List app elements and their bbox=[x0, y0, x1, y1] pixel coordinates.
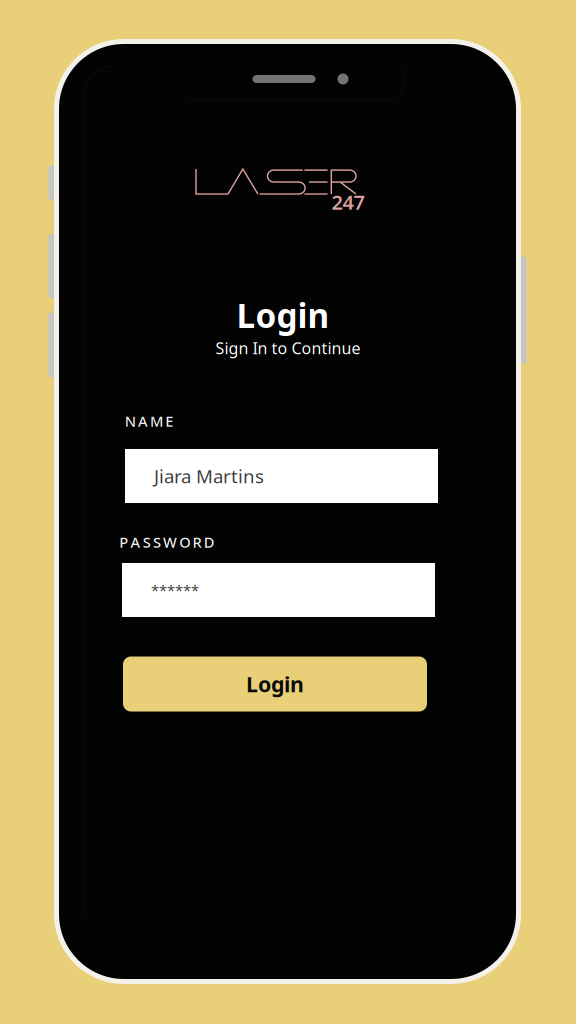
staticText: R bbox=[192, 532, 201, 552]
staticText: Login bbox=[246, 670, 304, 698]
staticText: Jiara Martins bbox=[154, 464, 264, 488]
staticText: S bbox=[153, 532, 161, 552]
staticText: W bbox=[163, 532, 177, 552]
staticText: ****** bbox=[151, 580, 199, 600]
staticText: 247 bbox=[331, 189, 364, 215]
staticText: A bbox=[130, 532, 140, 552]
staticText: A bbox=[138, 411, 148, 431]
staticText: S bbox=[143, 532, 151, 552]
staticText: P bbox=[119, 532, 128, 552]
staticText: D bbox=[204, 532, 215, 552]
button[interactable]: Login bbox=[123, 656, 427, 711]
staticText: N bbox=[125, 411, 136, 431]
staticText: E bbox=[165, 411, 173, 431]
staticText: Sign In to Continue bbox=[215, 337, 360, 359]
staticText: Login bbox=[236, 293, 329, 337]
staticText: O bbox=[179, 532, 190, 552]
staticText: M bbox=[150, 411, 163, 431]
